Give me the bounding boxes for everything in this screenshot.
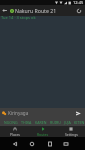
button[interactable]: JUJA [64, 120, 71, 125]
staticText: Tue 14 · 3 stops ok [1, 15, 36, 20]
button[interactable]: Back [11, 137, 19, 150]
button[interactable]: Places [0, 126, 29, 137]
button[interactable]: Refresh [74, 6, 83, 15]
button[interactable]: Home [28, 137, 36, 150]
staticText: THIKA [21, 120, 32, 125]
button[interactable]: THIKA [21, 120, 32, 125]
button[interactable]: NGONG [4, 120, 18, 125]
staticText: NGONG [4, 120, 18, 125]
staticText: KAREN [35, 120, 47, 125]
staticText: Settings [65, 132, 78, 137]
button[interactable]: Keyboard [62, 137, 70, 150]
button[interactable]: RUIRU [50, 120, 61, 125]
button[interactable]: Routes [29, 126, 57, 137]
staticText: RUIRU [50, 120, 61, 125]
button[interactable]: Recent apps [46, 137, 54, 150]
button[interactable]: Send [74, 109, 83, 118]
staticText: KITENGELA [74, 120, 85, 125]
button[interactable]: Settings [57, 126, 85, 137]
staticText: Places [10, 132, 20, 137]
button[interactable]: KAREN [35, 120, 47, 125]
staticText: Nakuru Route 21 [15, 7, 57, 14]
staticText: JUJA [64, 120, 71, 125]
staticText: Kirinyaga [8, 110, 29, 116]
button[interactable]: KITENGELA [74, 120, 85, 125]
staticText: Routes [37, 132, 49, 137]
staticText: 12:45 [73, 0, 84, 5]
button[interactable]: Back [0, 6, 9, 15]
